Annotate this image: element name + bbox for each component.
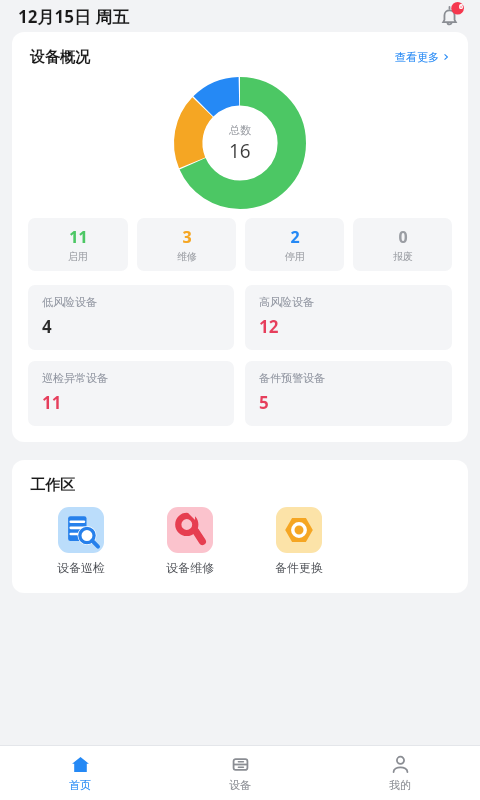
staticText: 12月15日 周五: [18, 5, 130, 28]
staticText: 4: [42, 315, 52, 338]
button[interactable]: 2: [245, 218, 344, 271]
staticText: 工作区: [30, 476, 75, 495]
button[interactable]: 设备巡检: [26, 507, 135, 575]
staticText: 巡检异常设备: [42, 371, 108, 385]
staticText: 我的: [389, 778, 411, 792]
button[interactable]: 首页: [0, 746, 160, 800]
button[interactable]: 查看更多: [391, 46, 454, 68]
staticText: 低风险设备: [42, 295, 97, 309]
staticText: 设备维修: [166, 560, 214, 575]
staticText: 备件更换: [275, 560, 323, 575]
button[interactable]: 设备维修: [135, 507, 244, 575]
staticText: 首页: [69, 778, 91, 792]
staticText: 设备: [229, 778, 251, 792]
staticText: 3: [182, 226, 192, 248]
staticText: 报废: [393, 250, 413, 263]
staticText: 设备概况: [30, 48, 90, 67]
button[interactable]: 我的: [320, 746, 480, 800]
button[interactable]: 巡检异常设备: [28, 361, 234, 426]
staticText: 查看更多: [395, 50, 439, 64]
staticText: 16: [229, 138, 251, 164]
staticText: 11: [42, 391, 62, 414]
staticText: 11: [69, 226, 88, 248]
button[interactable]: 备件更换: [244, 507, 353, 575]
staticText: 0: [398, 226, 408, 248]
button[interactable]: Notifications: [436, 1, 466, 31]
staticText: 停用: [285, 250, 305, 263]
button[interactable]: 低风险设备: [28, 285, 234, 350]
staticText: 12: [259, 315, 279, 338]
staticText: 总数: [229, 123, 251, 137]
button[interactable]: 设备: [160, 746, 320, 800]
staticText: 高风险设备: [259, 295, 314, 309]
staticText: 维修: [177, 250, 197, 263]
button[interactable]: 3: [137, 218, 236, 271]
button[interactable]: 11: [28, 218, 128, 271]
button[interactable]: 备件预警设备: [245, 361, 452, 426]
staticText: 备件预警设备: [259, 371, 325, 385]
button[interactable]: 高风险设备: [245, 285, 452, 350]
button[interactable]: 0: [353, 218, 452, 271]
staticText: 2: [290, 226, 300, 248]
staticText: 6: [459, 2, 464, 12]
staticText: 启用: [68, 250, 88, 263]
staticText: 设备巡检: [57, 560, 105, 575]
staticText: 5: [259, 391, 269, 414]
